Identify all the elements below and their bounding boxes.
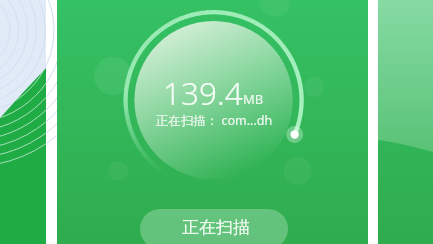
staticText: MB xyxy=(243,90,273,110)
staticText: 正在扫描 xyxy=(182,217,250,238)
staticText: 正在扫描： com...dh xyxy=(114,112,314,132)
staticText: 139.4 xyxy=(163,71,253,111)
button[interactable]: 正在扫描 xyxy=(140,209,288,244)
